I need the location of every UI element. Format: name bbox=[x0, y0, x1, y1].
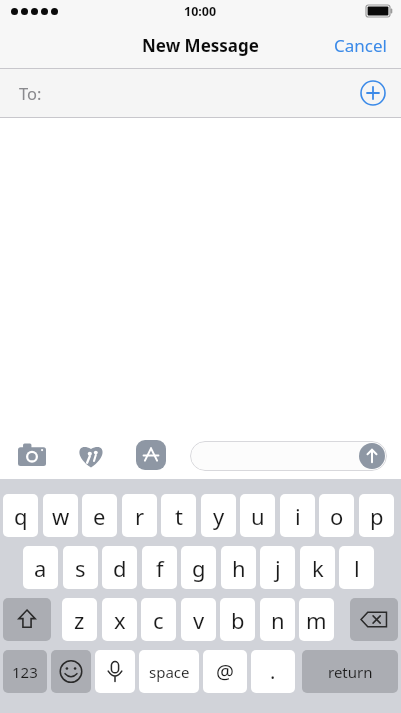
staticText: 10:00 bbox=[184, 3, 217, 20]
button[interactable]: z bbox=[62, 598, 97, 641]
staticText: m bbox=[306, 605, 327, 635]
staticText: e bbox=[93, 501, 106, 531]
staticText: d bbox=[113, 553, 127, 583]
button[interactable]: h bbox=[221, 546, 256, 589]
staticText: g bbox=[192, 553, 206, 583]
button[interactable]: Dictate bbox=[95, 650, 135, 693]
staticText: . bbox=[270, 658, 276, 685]
button[interactable]: s bbox=[63, 546, 98, 589]
button[interactable]: space bbox=[139, 650, 199, 693]
button[interactable]: q bbox=[3, 494, 38, 537]
button[interactable]: . bbox=[251, 650, 295, 693]
staticText: c bbox=[153, 605, 164, 635]
button[interactable]: Shift bbox=[3, 598, 51, 641]
button[interactable]: Backspace bbox=[350, 598, 398, 641]
staticText: space bbox=[149, 662, 190, 682]
staticText: k bbox=[312, 553, 324, 583]
staticText: u bbox=[251, 501, 265, 531]
button[interactable]: e bbox=[82, 494, 117, 537]
button[interactable]: o bbox=[319, 494, 354, 537]
button[interactable]: Apps bbox=[136, 440, 166, 470]
staticText: b bbox=[231, 605, 245, 635]
button[interactable]: Send bbox=[359, 443, 385, 469]
staticText: To: bbox=[19, 82, 42, 104]
button[interactable]: f bbox=[142, 546, 177, 589]
staticText: 123 bbox=[12, 662, 38, 682]
staticText: j bbox=[275, 553, 281, 583]
staticText: p bbox=[370, 501, 384, 531]
button[interactable]: p bbox=[359, 494, 394, 537]
staticText: s bbox=[75, 553, 86, 583]
button[interactable]: To: bbox=[0, 69, 401, 117]
staticText: Cancel bbox=[334, 34, 387, 57]
button[interactable]: m bbox=[299, 598, 334, 641]
button[interactable]: w bbox=[43, 494, 78, 537]
button[interactable]: x bbox=[102, 598, 137, 641]
staticText: y bbox=[213, 501, 225, 531]
button[interactable]: r bbox=[122, 494, 157, 537]
staticText: x bbox=[114, 605, 126, 635]
button[interactable]: c bbox=[141, 598, 176, 641]
button[interactable]: a bbox=[23, 546, 58, 589]
button[interactable]: Camera bbox=[18, 442, 46, 466]
button[interactable]: d bbox=[102, 546, 137, 589]
staticText: r bbox=[135, 501, 145, 531]
button[interactable]: g bbox=[181, 546, 216, 589]
staticText: New Message bbox=[142, 34, 259, 57]
staticText: a bbox=[34, 553, 47, 583]
button[interactable]: @ bbox=[203, 650, 247, 693]
staticText: return bbox=[328, 662, 373, 682]
staticText: n bbox=[271, 605, 285, 635]
button[interactable]: i bbox=[280, 494, 315, 537]
button[interactable]: l bbox=[339, 546, 374, 589]
button[interactable]: n bbox=[260, 598, 295, 641]
staticText: o bbox=[330, 501, 344, 531]
staticText: v bbox=[193, 605, 205, 635]
staticText: z bbox=[74, 605, 85, 635]
button[interactable]: v bbox=[181, 598, 216, 641]
staticText: f bbox=[156, 553, 164, 583]
staticText: i bbox=[295, 501, 301, 531]
button[interactable]: Send bbox=[190, 441, 387, 471]
button[interactable]: Add contact bbox=[360, 80, 386, 106]
staticText: q bbox=[14, 501, 28, 531]
button[interactable]: Emoji bbox=[51, 650, 91, 693]
button[interactable]: y bbox=[201, 494, 236, 537]
staticText: @ bbox=[216, 658, 234, 685]
button[interactable]: t bbox=[161, 494, 196, 537]
button[interactable]: Cancel bbox=[320, 26, 401, 65]
staticText: w bbox=[52, 501, 70, 531]
button[interactable]: u bbox=[240, 494, 275, 537]
button[interactable]: b bbox=[220, 598, 255, 641]
button[interactable]: j bbox=[260, 546, 295, 589]
button[interactable]: return bbox=[302, 650, 398, 693]
button[interactable]: k bbox=[300, 546, 335, 589]
button[interactable]: 123 bbox=[3, 650, 47, 693]
staticText: l bbox=[354, 553, 360, 583]
button[interactable]: Digital Touch bbox=[76, 440, 106, 470]
staticText: t bbox=[175, 501, 183, 531]
staticText: h bbox=[232, 553, 246, 583]
